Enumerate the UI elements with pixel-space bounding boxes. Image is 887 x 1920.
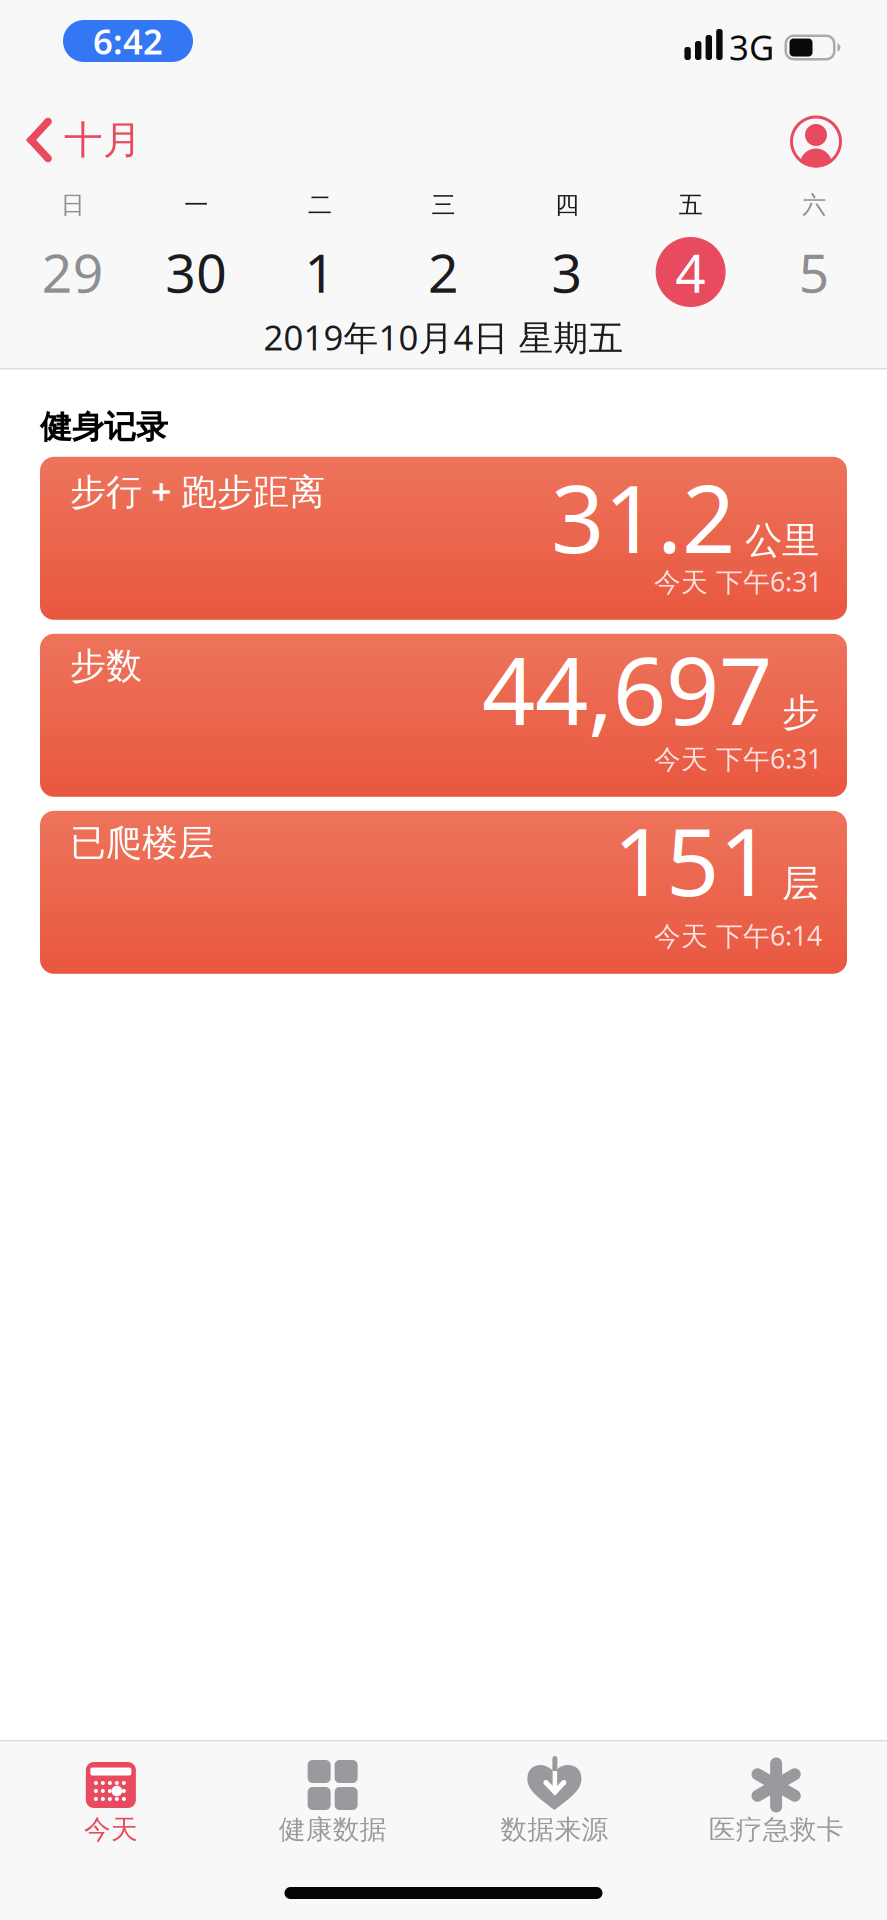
button[interactable]: 数据来源 <box>443 1741 665 1886</box>
staticText: 健康数据 <box>279 1813 387 1846</box>
button[interactable]: 健康数据 <box>222 1741 444 1886</box>
button[interactable]: 已爬楼层 <box>40 811 847 974</box>
staticText: 六 <box>802 190 826 220</box>
staticText: 步行 + 跑步距离 <box>70 467 325 515</box>
button[interactable]: 今天 <box>0 1741 222 1886</box>
staticText: 3G <box>729 24 774 70</box>
button[interactable]: 返回通话 <box>63 20 193 62</box>
staticText: 44,697 <box>482 627 772 751</box>
staticText: 层 <box>782 861 819 906</box>
button[interactable]: 1 <box>258 236 382 308</box>
staticText: 30 <box>165 237 227 307</box>
button[interactable]: 2 <box>382 236 505 308</box>
button[interactable]: 返回十月 <box>26 116 142 164</box>
staticText: 四 <box>555 190 579 220</box>
button[interactable]: 3 <box>505 236 629 308</box>
button[interactable]: 步数 <box>40 634 847 797</box>
staticText: 一 <box>184 190 208 220</box>
staticText: 6:42 <box>93 18 163 64</box>
staticText: 1 <box>304 237 335 307</box>
staticText: 数据来源 <box>500 1813 608 1846</box>
staticText: 今天 下午6:31 <box>654 564 822 599</box>
staticText: 2 <box>428 237 459 307</box>
staticText: 29 <box>42 237 104 307</box>
staticText: 五 <box>679 190 703 220</box>
staticText: 健身记录 <box>40 407 168 447</box>
staticText: 3 <box>552 237 583 307</box>
staticText: 步数 <box>70 644 142 688</box>
staticText: 公里 <box>745 518 819 563</box>
staticText: 5 <box>799 237 830 307</box>
button[interactable]: 4 <box>629 236 752 308</box>
staticText: 今天 下午6:14 <box>654 918 822 953</box>
button[interactable]: 医疗急救卡 <box>665 1741 887 1886</box>
staticText: 151 <box>613 798 772 922</box>
staticText: 十月 <box>64 116 142 164</box>
button[interactable]: 29 <box>11 236 135 308</box>
button[interactable]: 5 <box>752 236 876 308</box>
staticText: 今天 下午6:31 <box>654 741 822 776</box>
staticText: 三 <box>431 190 455 220</box>
staticText: 已爬楼层 <box>70 821 214 865</box>
staticText: 4 <box>675 237 706 307</box>
staticText: 二 <box>308 190 332 220</box>
button[interactable]: 步行 + 跑步距离 <box>40 457 847 620</box>
button[interactable]: 30 <box>135 236 258 308</box>
staticText: 步 <box>782 690 819 735</box>
staticText: 2019年10月4日 星期五 <box>263 314 623 360</box>
button[interactable]: 个人资料 <box>790 115 842 167</box>
staticText: 日 <box>61 190 85 220</box>
staticText: 医疗急救卡 <box>709 1813 844 1846</box>
staticText: 31.2 <box>551 455 735 579</box>
staticText: 今天 <box>84 1813 138 1846</box>
